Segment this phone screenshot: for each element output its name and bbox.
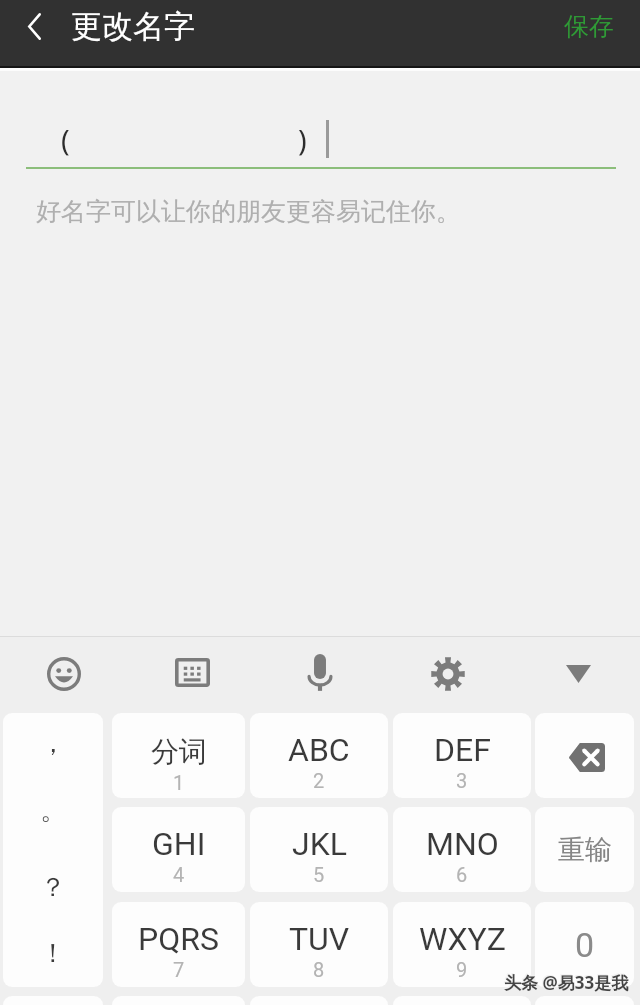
staticText: 9	[456, 958, 468, 981]
staticText: ABC	[288, 731, 350, 769]
staticText: 保存	[564, 11, 614, 42]
button[interactable]: (	[0, 68, 640, 172]
staticText: 7	[173, 958, 185, 981]
staticText: WXYZ	[419, 920, 506, 958]
button[interactable]: JKL	[250, 807, 388, 892]
button[interactable]: 0	[535, 902, 634, 987]
button[interactable]: Backspace	[535, 713, 634, 798]
staticText: JKL	[292, 825, 347, 863]
button[interactable]: GHI	[112, 807, 245, 892]
button[interactable]: Hide keyboard	[512, 636, 640, 712]
staticText: ，	[40, 727, 66, 760]
button[interactable]: Voice input	[256, 636, 384, 712]
staticText: 3	[456, 769, 468, 792]
button[interactable]: DEF	[393, 713, 531, 798]
staticText: GHI	[152, 825, 206, 863]
staticText: 好名字可以让你的朋友更容易记住你。	[36, 196, 461, 227]
staticText: )	[298, 120, 307, 159]
staticText: 8	[313, 958, 325, 981]
button[interactable]: WXYZ	[393, 902, 531, 987]
button[interactable]: 重输	[535, 807, 634, 892]
staticText: MNO	[426, 825, 499, 863]
staticText: 0	[575, 925, 595, 965]
button[interactable]: PQRS	[112, 902, 245, 987]
button[interactable]: Back	[0, 0, 68, 53]
staticText: 更改名字	[71, 7, 195, 46]
staticText: 分词	[151, 734, 207, 769]
staticText: 。	[40, 794, 66, 827]
button[interactable]: 分词	[112, 713, 245, 798]
staticText: PQRS	[138, 920, 219, 958]
staticText: 头条 @易33是我	[504, 971, 629, 994]
staticText: 头条 @易33是我	[503, 970, 628, 993]
staticText: (	[61, 120, 70, 159]
staticText: 1	[173, 771, 185, 794]
staticText: ！	[40, 937, 66, 970]
staticText: DEF	[434, 731, 491, 769]
staticText: 重输	[558, 833, 612, 867]
staticText: 6	[456, 863, 468, 886]
button[interactable]: MNO	[393, 807, 531, 892]
button[interactable]: TUV	[250, 902, 388, 987]
staticText: ？	[40, 871, 66, 904]
staticText: 4	[173, 863, 185, 886]
staticText: 5	[313, 863, 325, 886]
button[interactable]: ABC	[250, 713, 388, 798]
button[interactable]: Punctuation	[3, 713, 103, 987]
button[interactable]: 保存	[538, 0, 640, 53]
button[interactable]: Emoji	[0, 636, 128, 712]
button[interactable]: Settings	[384, 636, 512, 712]
staticText: 2	[313, 769, 325, 792]
staticText: TUV	[289, 920, 350, 958]
button[interactable]: Switch keyboard	[128, 636, 256, 712]
